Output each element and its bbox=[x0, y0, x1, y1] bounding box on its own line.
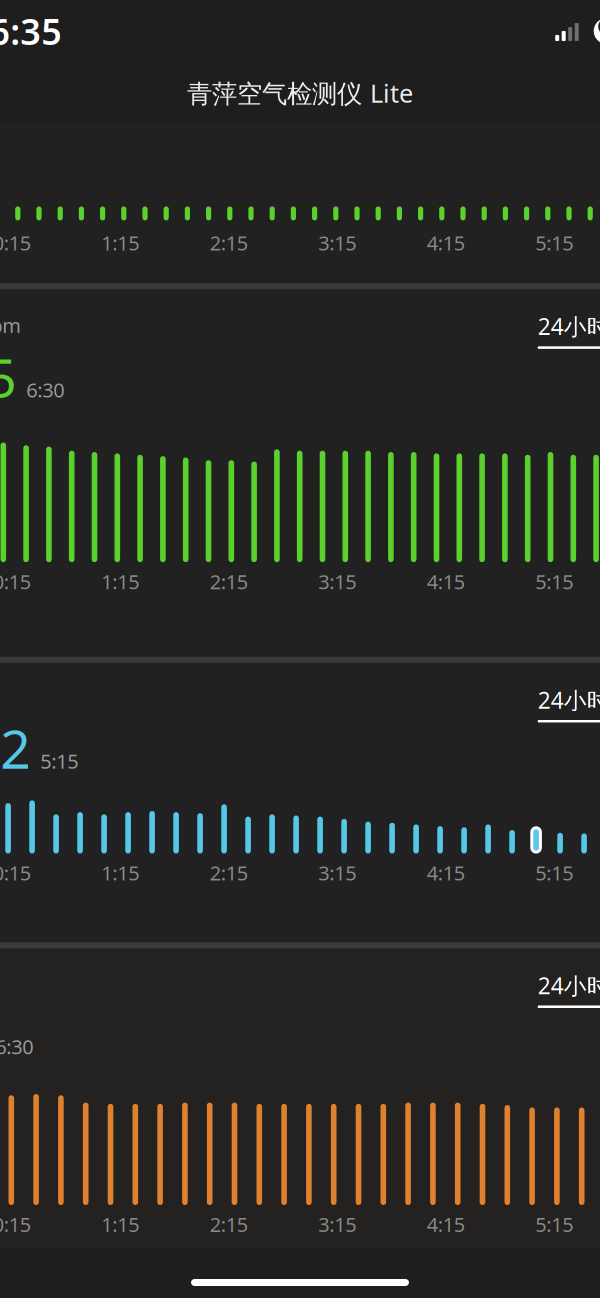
staticText: 0:15 bbox=[0, 1211, 31, 1238]
staticText: 5:15 bbox=[40, 748, 78, 774]
staticText: 5:15 bbox=[535, 568, 573, 595]
staticText: 0:15 bbox=[0, 860, 31, 886]
staticText: 2:15 bbox=[210, 229, 248, 256]
staticText: 3:15 bbox=[318, 860, 356, 886]
staticText: 0:15 bbox=[0, 229, 31, 256]
staticText: 4:15 bbox=[427, 860, 465, 886]
staticText: 青萍空气检测仪 Lite bbox=[187, 76, 413, 110]
staticText: 5:15 bbox=[535, 860, 573, 886]
button[interactable]: 24小时 bbox=[538, 311, 600, 349]
staticText: ppm bbox=[0, 312, 21, 339]
staticText: 4:15 bbox=[427, 229, 465, 256]
staticText: 1:15 bbox=[101, 229, 139, 256]
staticText: 24小时 bbox=[538, 970, 600, 1000]
staticText: 2:15 bbox=[210, 1211, 248, 1238]
staticText: 06:35 bbox=[0, 7, 62, 55]
staticText: 3:15 bbox=[318, 568, 356, 595]
staticText: 1:15 bbox=[101, 568, 139, 595]
staticText: 835 bbox=[0, 341, 17, 412]
staticText: 4:15 bbox=[427, 568, 465, 595]
staticText: 3:15 bbox=[318, 1211, 356, 1238]
staticText: 22.2 bbox=[0, 713, 31, 783]
staticText: 3:15 bbox=[318, 229, 356, 256]
staticText: 5:15 bbox=[535, 1211, 573, 1238]
staticText: 1:15 bbox=[101, 1211, 139, 1238]
staticText: 1:15 bbox=[101, 860, 139, 886]
staticText: 2:15 bbox=[210, 860, 248, 886]
staticText: 0:15 bbox=[0, 568, 31, 595]
staticText: 5:15 bbox=[535, 229, 573, 256]
button[interactable]: 24小时 bbox=[538, 685, 600, 722]
staticText: 6:30 bbox=[0, 1033, 33, 1060]
staticText: 6:30 bbox=[26, 376, 64, 403]
staticText: °C bbox=[0, 683, 1, 710]
staticText: 2:15 bbox=[210, 568, 248, 595]
staticText: 4:15 bbox=[427, 1211, 465, 1238]
staticText: 24小时 bbox=[538, 685, 600, 715]
staticText: 24小时 bbox=[538, 311, 600, 341]
button[interactable]: 24小时 bbox=[538, 970, 600, 1008]
